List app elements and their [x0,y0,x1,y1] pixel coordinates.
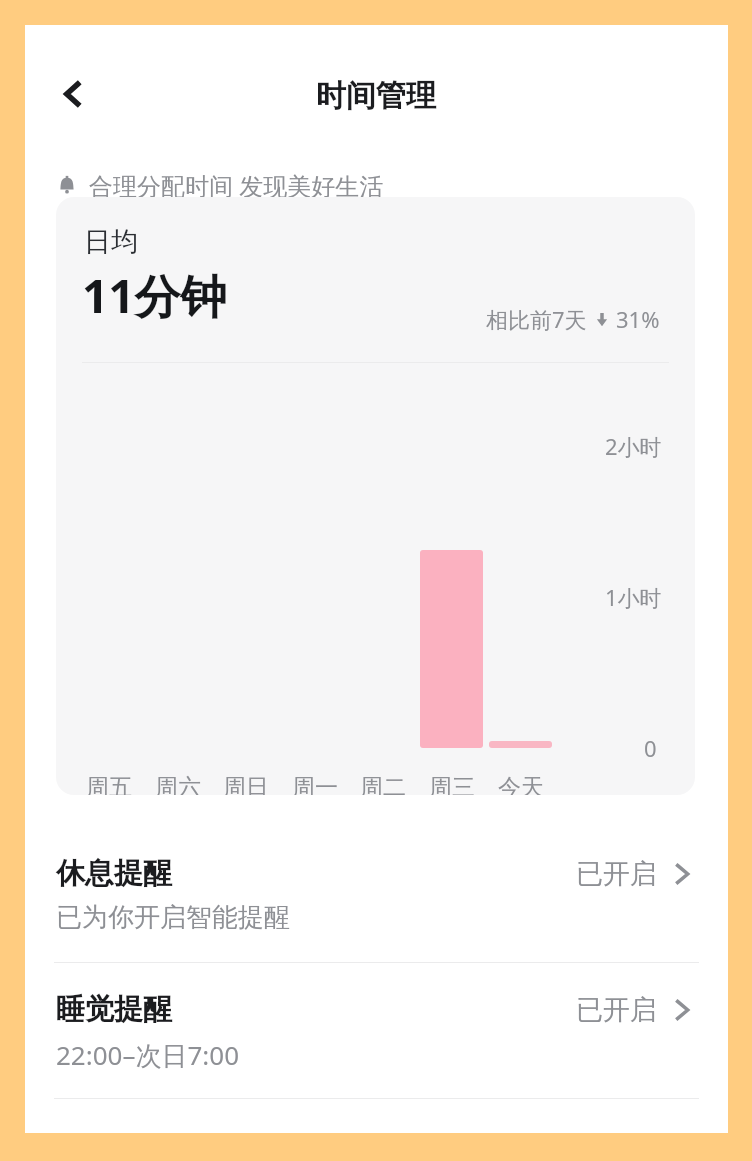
staticText: 已开启 [576,857,657,891]
staticText: 已为你开启智能提醒 [56,901,290,934]
staticText: 周三 [429,773,475,795]
staticText: 合理分配时间 发现美好生活 [89,169,384,202]
staticText: 周二 [360,773,406,795]
staticText: 休息提醒 [56,855,172,892]
staticText: 周六 [155,773,201,795]
staticText: 周一 [292,773,338,795]
staticText: 1小时 [605,582,662,612]
staticText: 11分钟 [82,264,227,327]
staticText: 31% [616,304,660,334]
staticText: 日均 [84,225,138,259]
staticText: 周五 [86,773,132,795]
staticText: 今天 [498,773,544,795]
button[interactable]: 休息提醒 [47,843,705,955]
staticText: 已开启 [576,993,657,1027]
button[interactable]: 睡觉提醒 [47,979,705,1091]
staticText: 时间管理 [37,77,715,115]
staticText: 睡觉提醒 [56,991,172,1028]
staticText: 22:00–次日7:00 [56,1037,240,1073]
staticText: 2小时 [605,431,662,461]
staticText: 周日 [223,773,269,795]
staticText: 0 [644,733,657,763]
button[interactable]: Back [45,66,101,122]
staticText: 相比前7天 [486,304,587,334]
